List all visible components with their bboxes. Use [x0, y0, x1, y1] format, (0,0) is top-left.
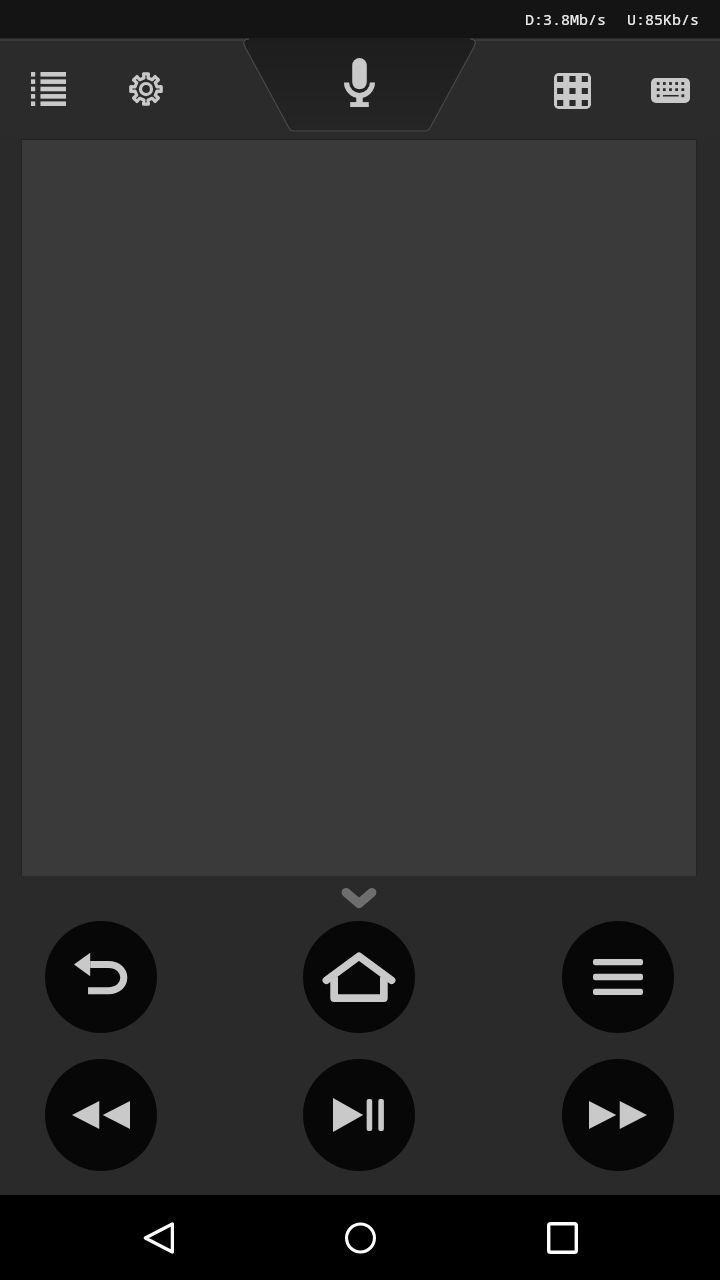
button[interactable]: Back — [45, 921, 157, 1033]
button[interactable]: Recents — [520, 1195, 604, 1280]
button[interactable]: Play or pause — [303, 1059, 415, 1171]
button[interactable]: Home — [318, 1195, 402, 1280]
button[interactable]: Menu — [562, 921, 674, 1033]
button[interactable]: Keyboard — [634, 38, 706, 137]
button[interactable]: Fast forward — [562, 1059, 674, 1171]
button[interactable]: Voice — [323, 38, 395, 137]
button[interactable]: List — [12, 38, 84, 137]
staticText: U:85Kb/s — [627, 9, 700, 29]
button[interactable]: Settings — [110, 38, 182, 137]
button[interactable]: Rewind — [45, 1059, 157, 1171]
button[interactable]: Collapse — [327, 877, 391, 919]
staticText: D:3.8Mb/s — [525, 9, 607, 29]
button[interactable]: Home — [303, 921, 415, 1033]
button[interactable]: Keypad — [536, 38, 608, 137]
button[interactable]: Back — [116, 1195, 200, 1280]
